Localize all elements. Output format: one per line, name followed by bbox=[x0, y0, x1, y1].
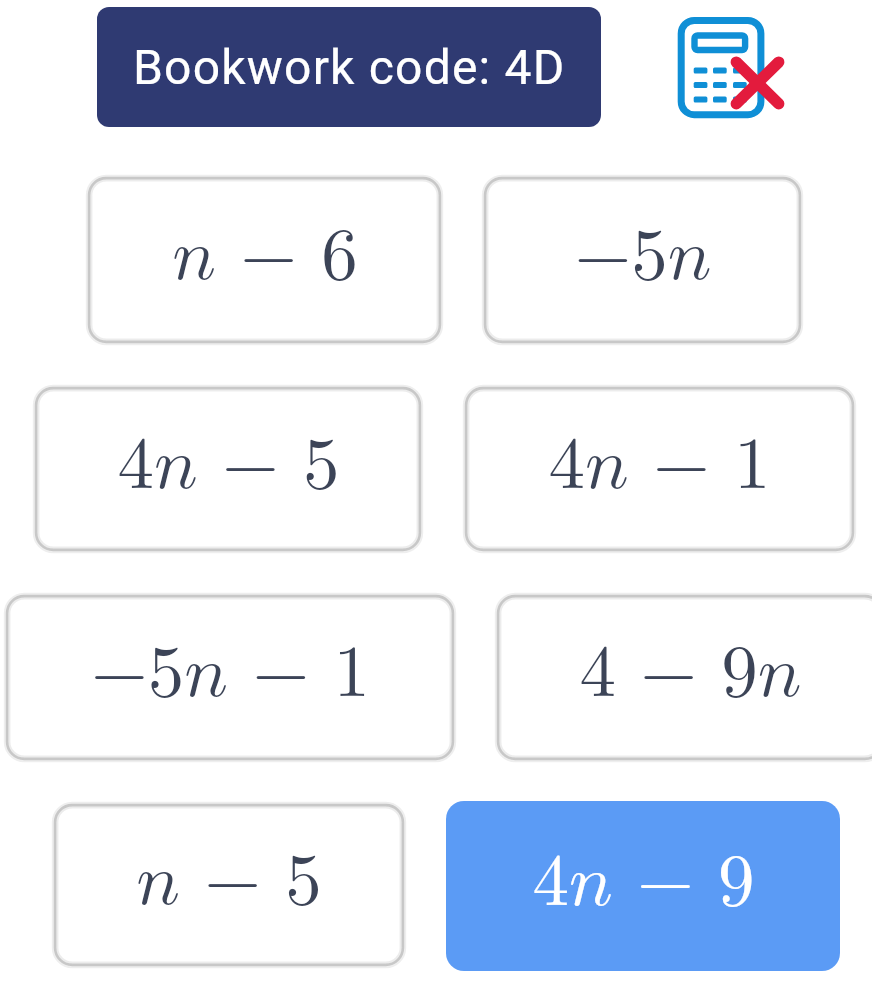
button[interactable]: 𝑛 − 6 bbox=[87, 176, 442, 344]
staticText: −5𝑛 bbox=[574, 220, 712, 293]
button[interactable]: 4𝑛 − 9 bbox=[446, 801, 840, 971]
button[interactable]: Bookwork code: 4D bbox=[97, 7, 601, 127]
staticText: 4𝑛 − 9 bbox=[532, 846, 755, 919]
staticText: 4𝑛 − 5 bbox=[117, 429, 340, 502]
staticText: −5𝑛 − 1 bbox=[91, 637, 370, 710]
button[interactable]: −5𝑛 − 1 bbox=[5, 594, 455, 761]
staticText: 4 − 9𝑛 bbox=[579, 637, 802, 710]
staticText: 𝑛 − 5 bbox=[136, 845, 322, 918]
button[interactable]: 4𝑛 − 5 bbox=[34, 386, 422, 552]
button[interactable]: Calculator not allowed bbox=[670, 10, 790, 125]
button[interactable]: −5𝑛 bbox=[483, 176, 802, 344]
button[interactable]: 4 − 9𝑛 bbox=[496, 594, 872, 761]
button[interactable]: 𝑛 − 5 bbox=[53, 803, 405, 967]
staticText: Bookwork code: 4D bbox=[133, 39, 566, 95]
staticText: 4𝑛 − 1 bbox=[548, 429, 771, 502]
staticText: 𝑛 − 6 bbox=[172, 220, 358, 293]
button[interactable]: 4𝑛 − 1 bbox=[464, 386, 855, 552]
